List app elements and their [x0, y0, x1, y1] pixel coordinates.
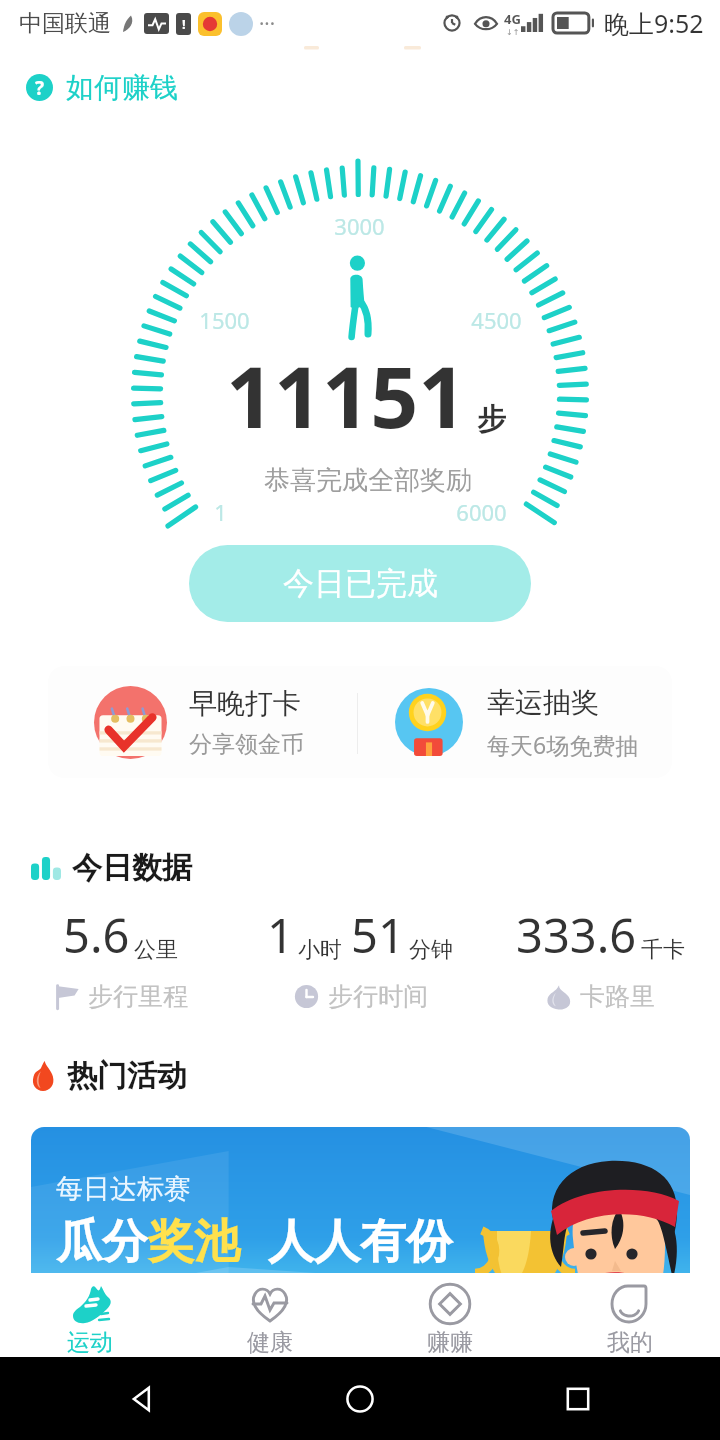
- staticText: 分享领金币: [189, 730, 304, 759]
- staticText: 如何赚钱: [66, 70, 178, 105]
- staticText: 步: [477, 401, 506, 438]
- staticText: 步行里程: [88, 981, 188, 1012]
- staticText: 今日数据: [72, 849, 192, 887]
- staticText: 奖池: [148, 1213, 240, 1271]
- staticText: 333.6: [516, 903, 637, 967]
- staticText: 每日达标赛: [56, 1172, 191, 1206]
- button[interactable]: 今日已完成: [189, 545, 531, 622]
- staticText: 热门活动: [67, 1057, 187, 1095]
- staticText: 3000: [334, 211, 385, 241]
- staticText: 恭喜完成全部奖励: [264, 464, 472, 497]
- staticText: 4500: [471, 305, 522, 335]
- button[interactable]: ?: [26, 70, 178, 105]
- staticText: 小时: [298, 936, 342, 964]
- staticText: 健康: [247, 1328, 293, 1357]
- button[interactable]: 赚赚: [360, 1273, 540, 1357]
- button[interactable]: 我的: [540, 1273, 720, 1357]
- staticText: !: [182, 15, 186, 33]
- staticText: ?: [35, 75, 45, 101]
- staticText: 公里: [134, 936, 178, 964]
- staticText: 中国联通: [19, 9, 111, 38]
- staticText: 分钟: [409, 936, 453, 964]
- button[interactable]: 早晚打卡: [94, 666, 364, 778]
- staticText: 6000: [456, 497, 507, 527]
- staticText: 人人有份: [268, 1213, 452, 1271]
- staticText: 1: [214, 497, 227, 527]
- staticText: 每天6场免费抽: [487, 729, 639, 760]
- staticText: 今日已完成: [283, 564, 438, 603]
- button[interactable]: 运动: [0, 1273, 180, 1357]
- staticText: 卡路里: [580, 981, 655, 1012]
- button[interactable]: Home: [338, 1377, 382, 1421]
- button[interactable]: 健康: [180, 1273, 360, 1357]
- staticText: ···: [259, 10, 276, 37]
- staticText: 晚上9:52: [604, 6, 704, 40]
- staticText: 早晚打卡: [189, 686, 301, 721]
- staticText: 瓜分: [56, 1213, 148, 1271]
- button[interactable]: 幸运抽奖: [395, 666, 665, 778]
- staticText: 千卡: [641, 936, 685, 964]
- staticText: 51: [351, 903, 405, 967]
- staticText: 我的: [607, 1328, 653, 1357]
- staticText: ↓↑: [506, 28, 520, 37]
- staticText: 1500: [199, 305, 250, 335]
- staticText: 幸运抽奖: [487, 685, 599, 720]
- staticText: 5.6: [63, 903, 130, 967]
- staticText: 11151: [226, 338, 467, 452]
- staticText: 运动: [67, 1328, 113, 1357]
- button[interactable]: 每日达标赛: [31, 1127, 690, 1327]
- staticText: 赚赚: [427, 1328, 473, 1357]
- staticText: 步行时间: [328, 981, 428, 1012]
- button[interactable]: Recents: [556, 1377, 600, 1421]
- button[interactable]: Back: [120, 1377, 164, 1421]
- staticText: 1: [267, 903, 294, 967]
- staticText: 4G: [504, 10, 521, 28]
